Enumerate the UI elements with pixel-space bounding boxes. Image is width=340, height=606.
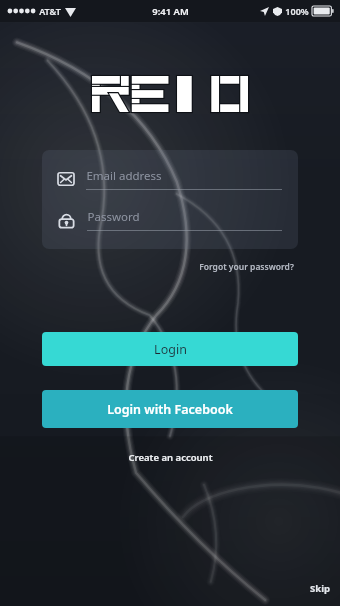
staticText: Login (154, 341, 187, 358)
button[interactable]: Login with Facebook (42, 390, 298, 428)
staticText: Forgot your password? (199, 261, 294, 273)
button[interactable]: Password (58, 209, 282, 231)
staticText: Email address (86, 168, 162, 184)
staticText: 9:41 AM (152, 5, 189, 18)
button[interactable]: Create an account (122, 448, 219, 467)
button[interactable]: Email address (58, 168, 282, 190)
staticText: Skip (310, 582, 330, 595)
staticText: Password (87, 209, 140, 225)
staticText: Login with Facebook (107, 401, 233, 418)
staticText: 100% (285, 5, 309, 17)
staticText: AT&T (39, 5, 61, 17)
button[interactable]: Login (42, 332, 298, 366)
button[interactable]: Forgot your password? (196, 258, 297, 276)
staticText: Create an account (128, 451, 213, 464)
button[interactable]: Skip (300, 575, 340, 602)
